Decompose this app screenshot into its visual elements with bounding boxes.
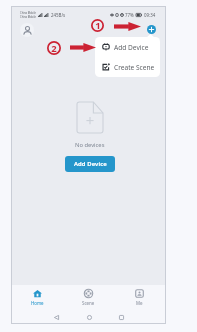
staticText: 2 [51,42,57,55]
staticText: No devices [75,141,105,149]
staticText: Scene [82,300,95,306]
staticText: Add Device [114,43,149,52]
button[interactable]: Recents [115,311,127,323]
button[interactable]: Profile [20,23,34,37]
staticText: 77% [125,12,134,18]
staticText: 09:34 [144,12,156,18]
staticText: China Mobile [20,15,36,19]
staticText: Create Scene [114,63,155,72]
button[interactable]: Home [83,311,95,323]
button[interactable]: Scene [63,285,114,310]
staticText: Home [31,300,44,306]
button[interactable]: Create Scene [95,57,160,77]
button[interactable]: Me [114,285,165,310]
button[interactable]: Add Device [65,156,115,172]
staticText: China Mobile [20,11,36,15]
button[interactable]: Home [12,285,63,310]
staticText: 1 [95,19,101,32]
button[interactable]: Add [147,25,156,34]
staticText: Me [136,300,143,306]
staticText: Add Device [74,160,107,168]
staticText: 245B/s [51,12,66,18]
button[interactable]: Back [50,311,62,323]
button[interactable]: Add Device [95,37,160,57]
